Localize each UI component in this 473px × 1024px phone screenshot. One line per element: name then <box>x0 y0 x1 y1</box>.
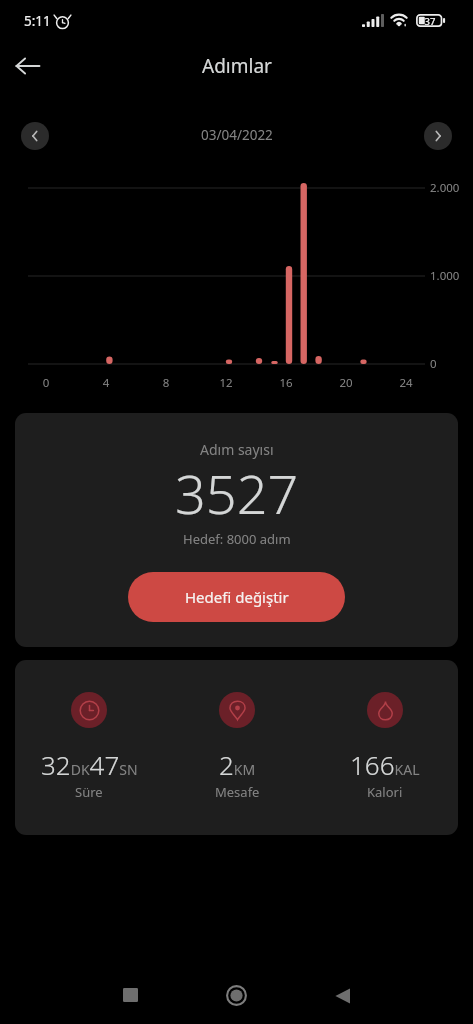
staticText: 3527 <box>175 456 299 530</box>
staticText: 24 <box>391 375 421 391</box>
staticText: 0 <box>430 356 437 372</box>
staticText: 20 <box>331 375 361 391</box>
button[interactable]: Hedefi değiştir <box>128 572 345 622</box>
staticText: Adımlar <box>202 53 272 79</box>
staticText: 166KAL <box>350 747 420 782</box>
staticText: 8 <box>151 375 181 391</box>
staticText: Hedefi değiştir <box>185 587 289 607</box>
staticText: 2KM <box>219 747 256 782</box>
staticText: 37 <box>424 15 436 28</box>
staticText: Süre <box>75 783 103 801</box>
staticText: Hedef: 8000 adım <box>183 530 291 548</box>
staticText: 4 <box>91 375 121 391</box>
staticText: 12 <box>211 375 241 391</box>
button[interactable]: Home <box>212 971 260 1019</box>
button[interactable]: Back <box>6 44 50 88</box>
button[interactable]: Recents <box>106 971 154 1019</box>
staticText: Kalori <box>367 783 403 801</box>
button[interactable]: Next day <box>424 122 452 150</box>
button[interactable]: 166KAL <box>311 660 458 801</box>
staticText: 16 <box>271 375 301 391</box>
staticText: 32DK47SN <box>41 747 138 782</box>
button[interactable]: 32DK47SN <box>15 660 163 801</box>
staticText: 03/04/2022 <box>201 126 273 144</box>
staticText: 1.000 <box>430 268 460 284</box>
staticText: Adım sayısı <box>200 440 274 459</box>
staticText: 2.000 <box>430 180 460 196</box>
staticText: Mesafe <box>215 783 260 801</box>
staticText: 0 <box>31 375 61 391</box>
button[interactable]: Previous day <box>21 122 49 150</box>
staticText: 5:11 <box>24 12 51 30</box>
button[interactable]: Back <box>318 972 366 1020</box>
button[interactable]: 2KM <box>163 660 311 801</box>
